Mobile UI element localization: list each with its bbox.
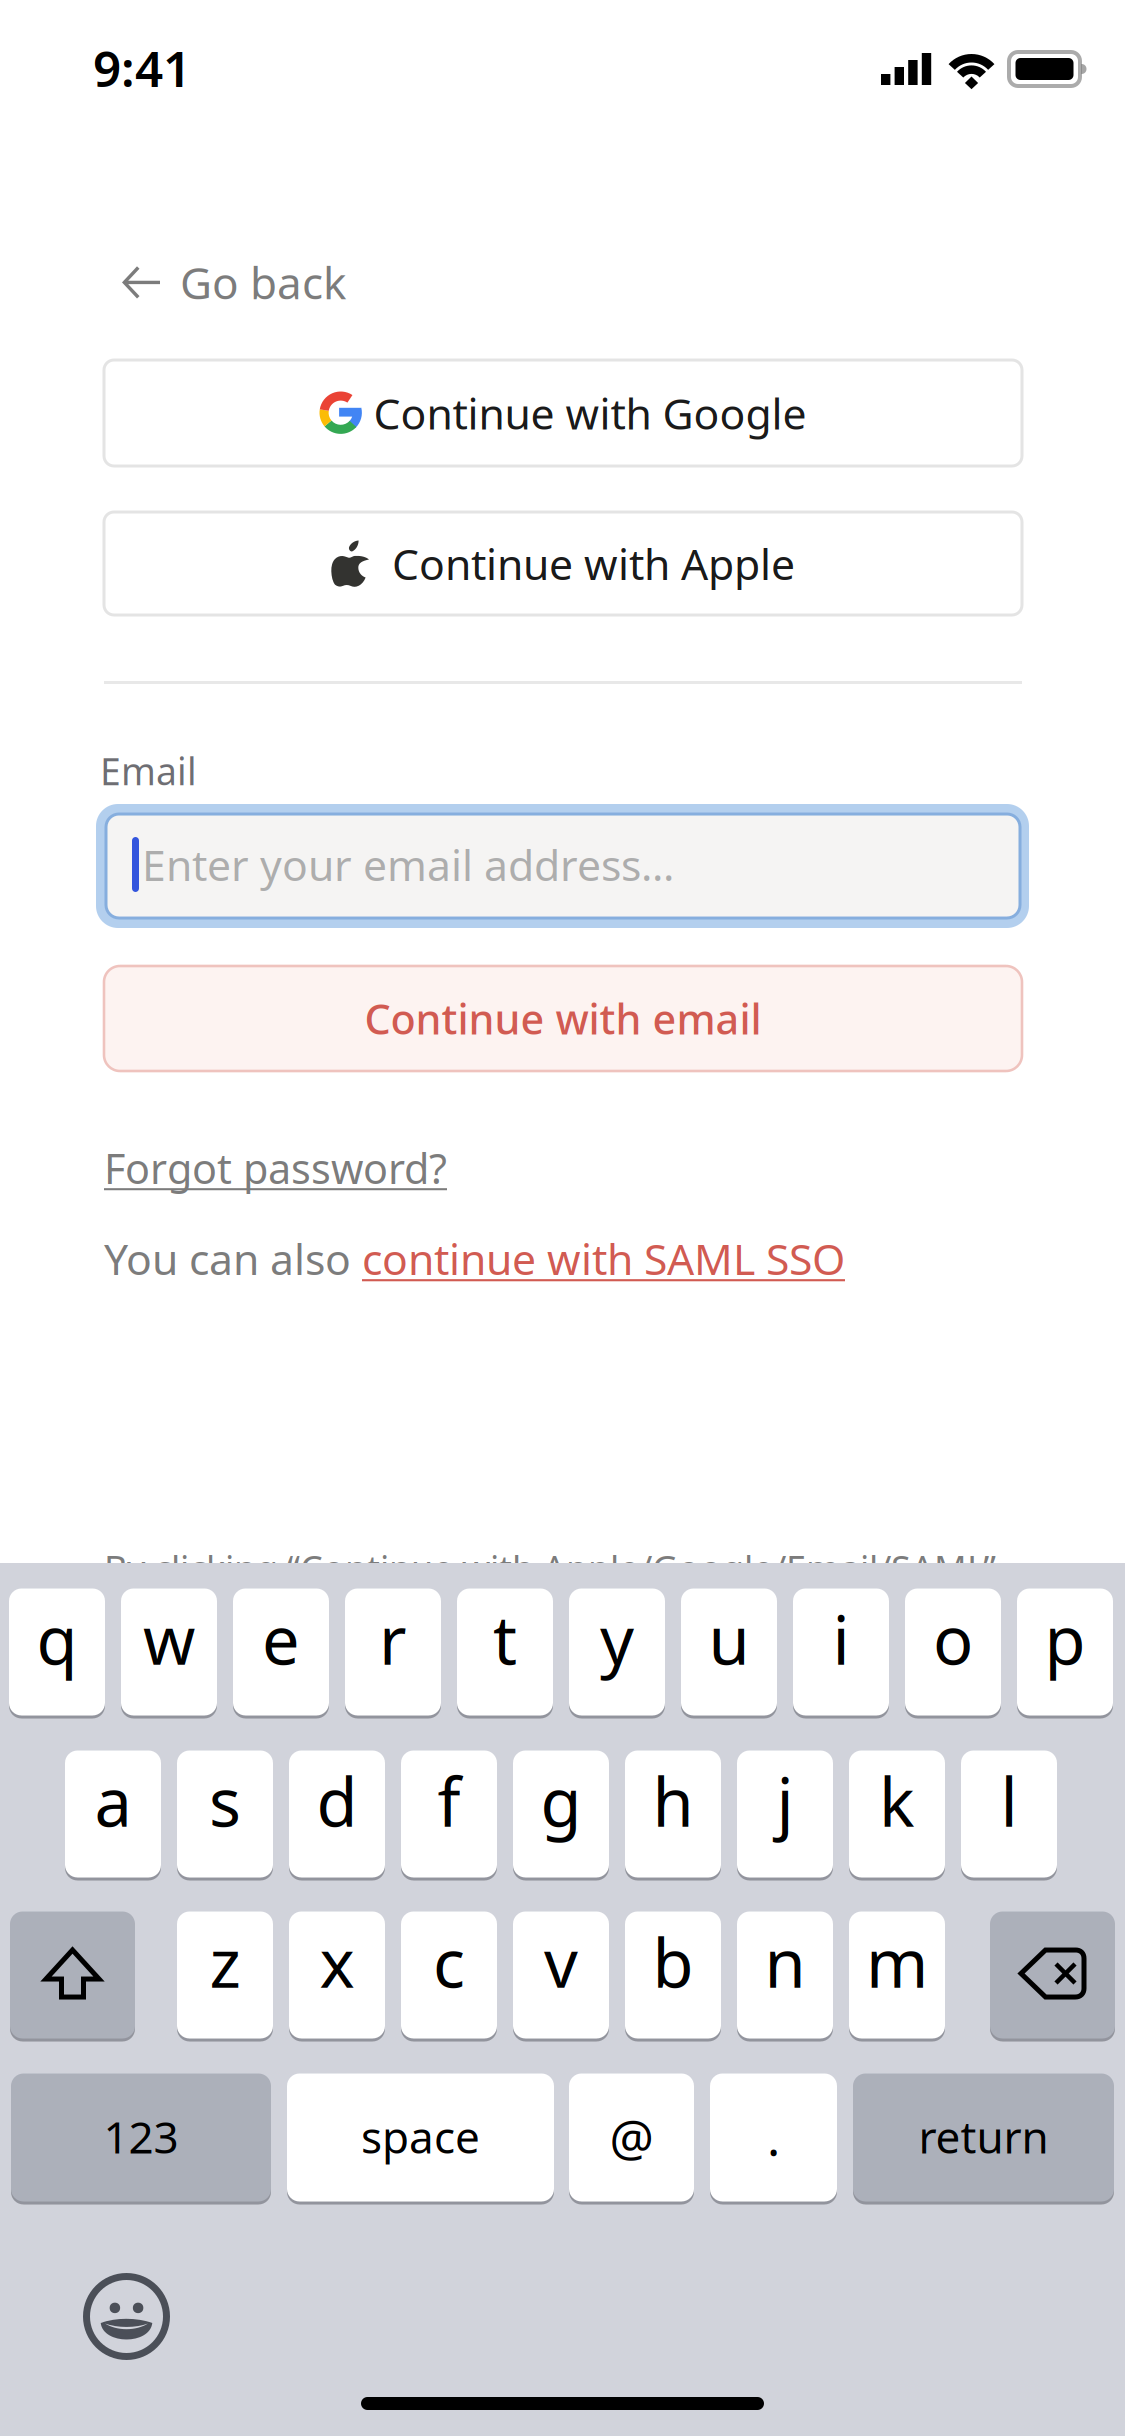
staticText: y [600, 1595, 634, 1683]
staticText: d [316, 1757, 357, 1845]
button[interactable]: o [905, 1587, 1001, 1717]
button[interactable]: Emoji [86, 2276, 167, 2357]
button[interactable]: n [737, 1910, 833, 2040]
staticText: b [652, 1918, 693, 2006]
button[interactable]: j [737, 1749, 833, 1879]
staticText: continue with SAML SSO [362, 1230, 845, 1287]
staticText: q [36, 1595, 77, 1683]
button[interactable]: f [401, 1749, 497, 1879]
staticText: k [879, 1757, 915, 1845]
staticText: Continue with Google [373, 385, 806, 441]
staticText: You can also [104, 1230, 362, 1287]
staticText: w [143, 1595, 195, 1683]
button[interactable]: a [65, 1749, 161, 1879]
button[interactable]: e [233, 1587, 329, 1717]
button[interactable]: i [793, 1587, 889, 1717]
staticText: 123 [103, 2107, 178, 2166]
staticText: Email [100, 746, 197, 790]
staticText: c [433, 1918, 465, 2006]
button[interactable]: d [289, 1749, 385, 1879]
staticText: f [437, 1757, 460, 1845]
button[interactable]: h [625, 1749, 721, 1879]
staticText: s [209, 1757, 241, 1845]
button[interactable]: m [849, 1910, 945, 2040]
staticText: h [652, 1757, 693, 1845]
staticText: p [1044, 1595, 1085, 1683]
staticText: Enter your email address... [142, 836, 674, 886]
button[interactable]: p [1017, 1587, 1113, 1717]
button[interactable]: w [121, 1587, 217, 1717]
button[interactable]: Continue with Apple [104, 512, 1022, 615]
button[interactable]: Go back [122, 253, 452, 303]
staticText: e [262, 1595, 300, 1683]
button[interactable]: r [345, 1587, 441, 1717]
staticText: v [544, 1918, 578, 2006]
staticText: space [361, 2107, 480, 2166]
button[interactable]: Shift [10, 1910, 135, 2040]
button[interactable]: Continue with Google [104, 360, 1022, 466]
staticText: t [493, 1595, 517, 1683]
button[interactable]: Delete [990, 1910, 1115, 2040]
staticText: m [866, 1918, 928, 2006]
button[interactable]: q [9, 1587, 105, 1717]
button[interactable]: y [569, 1587, 665, 1717]
button[interactable]: return [853, 2072, 1114, 2203]
button[interactable]: @ [569, 2072, 694, 2203]
staticText: x [319, 1918, 354, 2006]
staticText: Continue with email [364, 991, 761, 1046]
staticText: a [94, 1757, 131, 1845]
button[interactable]: k [849, 1749, 945, 1879]
staticText: g [540, 1757, 581, 1845]
staticText: Continue with Apple [392, 535, 795, 592]
button[interactable]: . [710, 2072, 837, 2203]
staticText: return [918, 2107, 1048, 2166]
staticText: Go back [180, 253, 346, 311]
button[interactable]: b [625, 1910, 721, 2040]
staticText: Forgot password? [104, 1141, 447, 1195]
staticText: u [708, 1595, 749, 1683]
staticText: n [764, 1918, 805, 2006]
staticText: i [832, 1595, 849, 1683]
staticText: z [209, 1918, 240, 2006]
button[interactable]: l [961, 1749, 1057, 1879]
staticText: j [776, 1757, 793, 1845]
staticText: o [933, 1595, 973, 1683]
button[interactable]: c [401, 1910, 497, 2040]
button[interactable]: x [289, 1910, 385, 2040]
staticText: By clicking “Continue with Apple/Google/… [104, 1544, 996, 1592]
button[interactable]: z [177, 1910, 273, 2040]
staticText: 9:41 [93, 35, 191, 85]
button[interactable]: continue with SAML SSO [362, 1230, 845, 1287]
button[interactable]: u [681, 1587, 777, 1717]
staticText: @ [609, 2104, 653, 2169]
button[interactable]: s [177, 1749, 273, 1879]
button[interactable]: g [513, 1749, 609, 1879]
staticText: l [1000, 1757, 1017, 1845]
button[interactable]: v [513, 1910, 609, 2040]
button[interactable]: Continue with email [104, 966, 1022, 1071]
staticText: r [379, 1595, 407, 1683]
button[interactable]: space [287, 2072, 554, 2203]
button[interactable]: 123 [11, 2072, 271, 2203]
staticText: . [767, 2104, 780, 2169]
button[interactable]: t [457, 1587, 553, 1717]
button[interactable]: Forgot password? [104, 1140, 604, 1196]
